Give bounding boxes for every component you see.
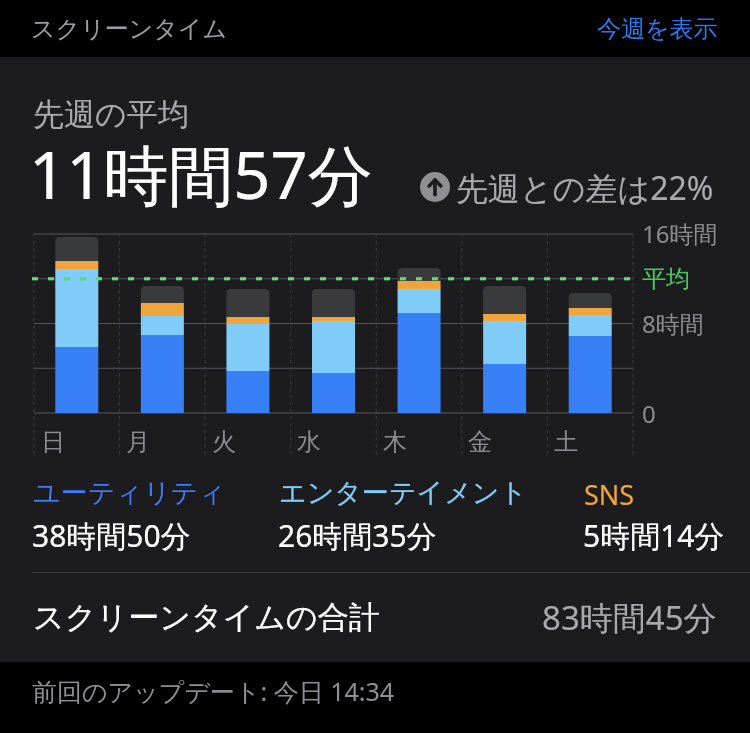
- staticText: 先週の平均: [33, 95, 189, 134]
- staticText: 5時間14分: [583, 515, 725, 556]
- staticText: 火: [212, 427, 236, 457]
- staticText: 木: [383, 427, 407, 457]
- staticText: 月: [126, 427, 150, 457]
- staticText: 16時間: [642, 217, 718, 250]
- staticText: 前回のアップデート: 今日 14:34: [32, 674, 395, 708]
- staticText: 11時間57分: [29, 130, 373, 219]
- staticText: スクリーンタイム: [31, 14, 227, 44]
- staticText: 26時間35分: [278, 515, 437, 556]
- button[interactable]: スクリーンタイムの合計: [0, 573, 750, 661]
- staticText: 日: [41, 427, 65, 457]
- staticText: 83時間45分: [542, 595, 717, 640]
- staticText: 金: [468, 427, 492, 457]
- staticText: スクリーンタイムの合計: [33, 598, 380, 637]
- staticText: エンターテイメント: [279, 476, 528, 510]
- staticText: 0: [642, 397, 656, 430]
- staticText: 今週を表示: [597, 14, 718, 44]
- staticText: ユーティリティ: [33, 476, 226, 510]
- staticText: 平均: [642, 264, 690, 294]
- staticText: 38時間50分: [32, 515, 191, 556]
- staticText: 先週との差は22%: [456, 166, 714, 210]
- staticText: 8時間: [642, 307, 704, 340]
- staticText: 水: [297, 427, 321, 457]
- staticText: 土: [554, 427, 578, 457]
- other: 前週より増加: [420, 172, 450, 202]
- staticText: SNS: [584, 476, 635, 513]
- button[interactable]: 今週を表示: [565, 4, 750, 54]
